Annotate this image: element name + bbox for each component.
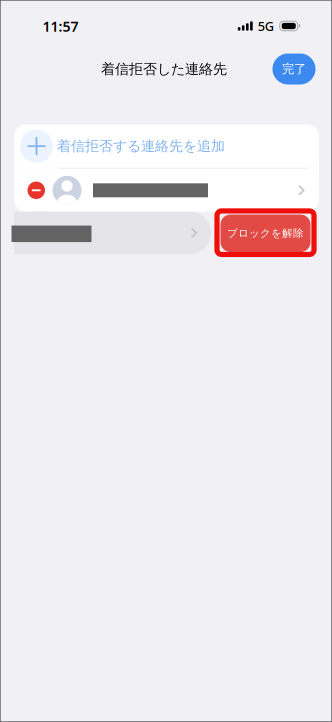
staticText: 着信拒否した連絡先 (101, 60, 227, 78)
button[interactable]: ブロックを解除 (220, 215, 310, 252)
button[interactable] (14, 169, 319, 212)
button[interactable] (14, 212, 211, 254)
staticText: 5G (258, 17, 274, 35)
button[interactable]: 着信拒否する連絡先を追加 (14, 124, 319, 168)
staticText: 11:57 (42, 17, 78, 36)
staticText: 完了 (282, 61, 306, 77)
staticText: ブロックを解除 (227, 227, 304, 240)
button[interactable]: 完了 (272, 53, 315, 84)
staticText: 着信拒否する連絡先を追加 (57, 137, 225, 155)
